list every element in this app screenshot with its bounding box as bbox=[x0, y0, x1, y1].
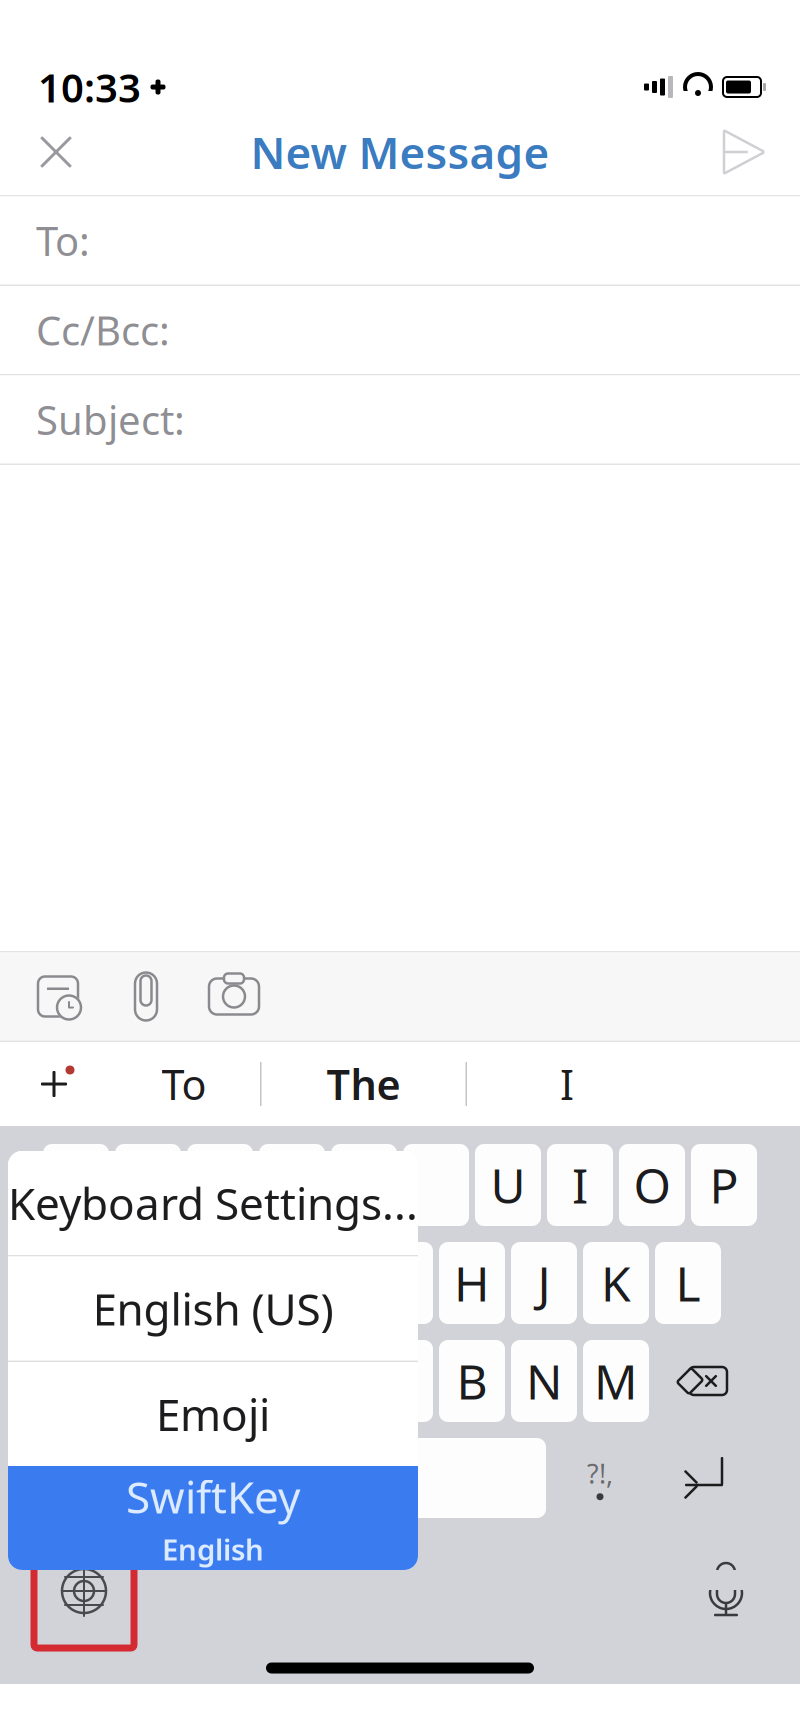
button[interactable]: Key bbox=[223, 1242, 289, 1324]
staticText: L bbox=[675, 1251, 700, 1315]
button[interactable]: Cc/Bcc: bbox=[0, 286, 800, 374]
button[interactable]: P bbox=[691, 1144, 757, 1226]
button[interactable]: O bbox=[619, 1144, 685, 1226]
staticText: Cc/Bcc: bbox=[36, 303, 170, 356]
button[interactable]: Insert availability bbox=[14, 953, 102, 1039]
button[interactable]: Delete bbox=[655, 1340, 751, 1422]
button[interactable]: Emoji bbox=[8, 1362, 418, 1466]
button[interactable]: space bbox=[246, 1438, 546, 1518]
button[interactable]: Dictate bbox=[678, 1534, 774, 1648]
button[interactable]: K bbox=[583, 1242, 649, 1324]
staticText: O bbox=[633, 1153, 670, 1217]
staticText: English bbox=[162, 1530, 264, 1569]
staticText: New Message bbox=[250, 123, 549, 181]
button[interactable]: L bbox=[655, 1242, 721, 1324]
staticText: J bbox=[537, 1251, 550, 1315]
staticText: K bbox=[601, 1251, 631, 1315]
button[interactable]: Key bbox=[331, 1144, 397, 1226]
button[interactable]: Key bbox=[223, 1340, 289, 1422]
staticText: U bbox=[490, 1153, 525, 1217]
button[interactable]: The bbox=[261, 1042, 465, 1126]
staticText: The bbox=[326, 1057, 400, 1111]
button[interactable]: Key bbox=[151, 1242, 217, 1324]
button[interactable]: More bbox=[0, 1042, 108, 1126]
button[interactable]: Key bbox=[403, 1144, 469, 1226]
staticText: I bbox=[560, 1057, 574, 1111]
button[interactable]: N bbox=[511, 1340, 577, 1422]
button[interactable]: I bbox=[467, 1042, 667, 1126]
button[interactable]: Key bbox=[115, 1144, 181, 1226]
staticText: SwiftKey bbox=[126, 1467, 300, 1526]
button[interactable]: Key bbox=[187, 1144, 253, 1226]
button[interactable]: To bbox=[108, 1042, 260, 1126]
button[interactable]: To: bbox=[0, 196, 800, 284]
button[interactable]: Subject: bbox=[0, 375, 800, 463]
button[interactable]: Send bbox=[698, 109, 790, 195]
button[interactable]: return bbox=[654, 1438, 754, 1518]
button[interactable]: Key bbox=[49, 1340, 145, 1422]
button[interactable]: Attach file bbox=[102, 953, 190, 1039]
button[interactable]: Key bbox=[295, 1340, 361, 1422]
staticText: To: bbox=[36, 214, 90, 267]
button[interactable]: Key bbox=[79, 1242, 145, 1324]
button[interactable]: Cancel bbox=[10, 109, 102, 195]
staticText: Emoji bbox=[156, 1385, 270, 1443]
staticText: H bbox=[454, 1251, 490, 1315]
staticText: N bbox=[526, 1349, 562, 1413]
staticText: M bbox=[594, 1349, 638, 1413]
button[interactable]: Key bbox=[148, 1437, 240, 1519]
button[interactable]: Key bbox=[259, 1144, 325, 1226]
button[interactable]: Punctuation bbox=[552, 1438, 648, 1518]
staticText: To bbox=[161, 1057, 206, 1111]
button[interactable]: J bbox=[511, 1242, 577, 1324]
button[interactable]: Key bbox=[367, 1340, 433, 1422]
button[interactable]: Key bbox=[151, 1340, 217, 1422]
staticText: English (US) bbox=[92, 1279, 333, 1338]
button[interactable]: I bbox=[547, 1144, 613, 1226]
staticText: P bbox=[709, 1153, 738, 1217]
button[interactable]: U bbox=[475, 1144, 541, 1226]
button[interactable]: H bbox=[439, 1242, 505, 1324]
staticText: I bbox=[572, 1153, 588, 1217]
button[interactable]: Next keyboard bbox=[34, 1534, 134, 1648]
button[interactable]: Key bbox=[295, 1242, 361, 1324]
staticText: B bbox=[456, 1349, 487, 1413]
button[interactable]: Key bbox=[367, 1242, 433, 1324]
button[interactable]: English (US) bbox=[8, 1256, 418, 1360]
button[interactable]: Key bbox=[43, 1144, 109, 1226]
button[interactable]: Take photo bbox=[190, 953, 278, 1039]
button[interactable]: SwiftKey bbox=[8, 1466, 418, 1570]
staticText: Keyboard Settings... bbox=[8, 1174, 418, 1232]
button[interactable]: B bbox=[439, 1340, 505, 1422]
staticText: ?!, bbox=[587, 1456, 613, 1491]
button[interactable]: M bbox=[583, 1340, 649, 1422]
staticText: 10:33 bbox=[38, 60, 141, 113]
staticText: Subject: bbox=[36, 393, 185, 446]
button[interactable]: Key bbox=[46, 1437, 142, 1519]
button[interactable]: Keyboard Settings... bbox=[8, 1151, 418, 1255]
